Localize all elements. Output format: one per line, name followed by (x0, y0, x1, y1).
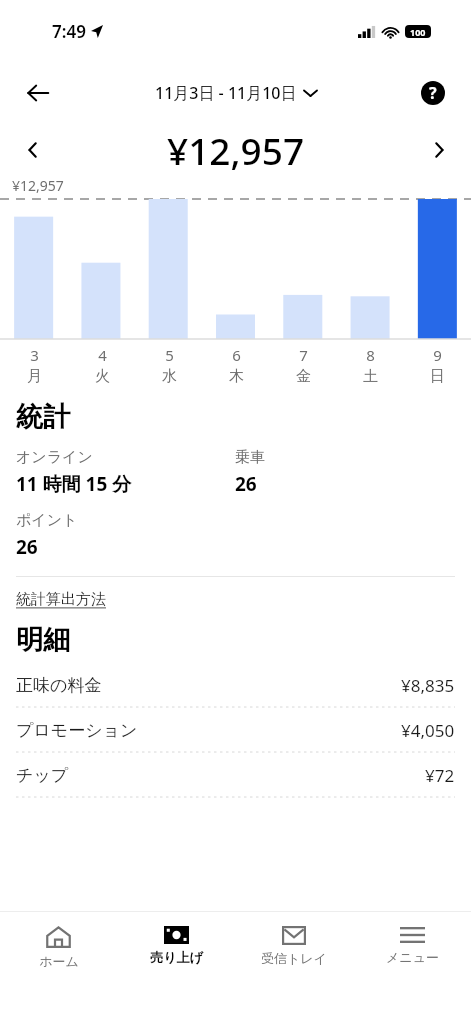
staticText: 9 (433, 345, 442, 365)
staticText: ¥4,050 (401, 719, 455, 742)
staticText: 正味の料金 (16, 675, 102, 696)
button[interactable]: 11月3日 - 11月10日 (155, 82, 317, 104)
button[interactable]: 受信トレイ (235, 922, 353, 970)
staticText: 3 (30, 345, 39, 365)
staticText: 乗車 (235, 448, 265, 467)
staticText: 火 (95, 367, 110, 386)
button[interactable]: プロモーション (16, 708, 455, 752)
staticText: 統計算出方法 (16, 590, 106, 609)
staticText: 100 (410, 26, 426, 38)
button[interactable]: Help (413, 73, 453, 113)
staticText: 日 (430, 367, 445, 386)
button[interactable]: ホーム (0, 922, 117, 973)
staticText: オンライン (16, 448, 93, 467)
staticText: 土 (363, 367, 378, 386)
staticText: 11月3日 - 11月10日 (155, 82, 297, 104)
staticText: ホーム (39, 953, 79, 969)
staticText: ポイント (16, 511, 78, 530)
button[interactable]: Back (18, 73, 58, 113)
staticText: 26 (16, 534, 38, 560)
staticText: 8 (366, 345, 375, 365)
staticText: 月 (27, 367, 42, 386)
staticText: ¥12,957 (167, 125, 305, 175)
staticText: 受信トレイ (261, 950, 327, 966)
staticText: ¥8,835 (401, 674, 455, 697)
staticText: 6 (232, 345, 241, 365)
staticText: 明細 (16, 623, 70, 657)
staticText: 11 時間 15 分 (16, 471, 132, 497)
staticText: 木 (229, 367, 244, 386)
staticText: 7:49 (52, 20, 86, 43)
button[interactable]: チップ (16, 753, 455, 797)
staticText: ¥72 (425, 764, 455, 787)
staticText: メニュー (386, 949, 439, 965)
staticText: 4 (98, 345, 107, 365)
button[interactable]: Next week (419, 130, 459, 170)
staticText: 金 (296, 367, 311, 386)
staticText: 5 (165, 345, 174, 365)
staticText: プロモーション (16, 720, 138, 741)
staticText: 7 (299, 345, 308, 365)
button[interactable]: Previous week (12, 130, 52, 170)
staticText: ¥12,957 (12, 176, 64, 195)
button[interactable]: 統計算出方法 (16, 590, 106, 609)
staticText: チップ (16, 765, 69, 786)
staticText: ? (429, 82, 437, 104)
staticText: 統計 (16, 400, 70, 434)
button[interactable]: メニュー (353, 922, 471, 969)
staticText: 水 (162, 367, 177, 386)
button[interactable]: 売り上げ (117, 922, 235, 969)
staticText: 売り上げ (150, 949, 203, 965)
staticText: 26 (235, 471, 257, 497)
button[interactable]: 正味の料金 (16, 663, 455, 707)
